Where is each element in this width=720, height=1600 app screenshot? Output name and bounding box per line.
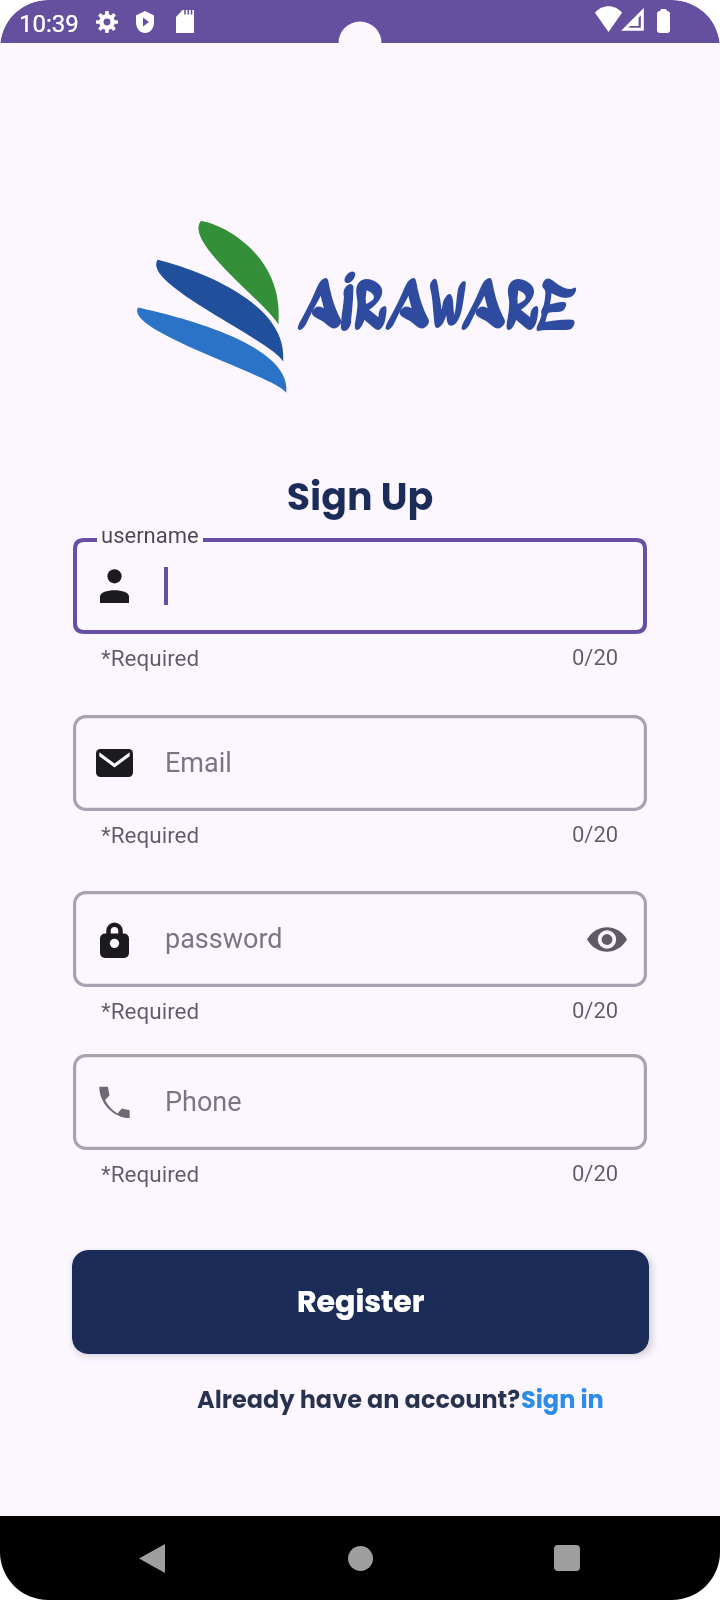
- button[interactable]: Email: [73, 715, 647, 811]
- button[interactable]: Show password: [584, 916, 630, 962]
- staticText: *Required: [101, 1161, 200, 1187]
- button[interactable]: [73, 538, 647, 634]
- staticText: *Required: [101, 998, 200, 1024]
- staticText: 0/20: [572, 645, 619, 671]
- staticText: Register: [297, 1281, 425, 1323]
- button[interactable]: Back: [112, 1516, 192, 1600]
- staticText: AIRAWARE: [296, 269, 575, 353]
- button[interactable]: Recents: [527, 1516, 607, 1600]
- staticText: password: [165, 923, 283, 955]
- staticText: Already have an account?: [197, 1383, 521, 1417]
- button[interactable]: Phone: [73, 1054, 647, 1150]
- button[interactable]: Sign in: [521, 1383, 604, 1417]
- staticText: 0/20: [572, 1161, 619, 1187]
- staticText: Sign Up: [0, 470, 720, 523]
- staticText: Sign in: [521, 1383, 604, 1417]
- staticText: *Required: [101, 822, 200, 848]
- staticText: *Required: [101, 645, 200, 671]
- staticText: Phone: [165, 1086, 242, 1118]
- button[interactable]: Register: [72, 1250, 649, 1354]
- staticText: 10:39: [19, 10, 79, 38]
- button[interactable]: Home: [320, 1516, 400, 1600]
- staticText: 0/20: [572, 998, 619, 1024]
- staticText: 0/20: [572, 822, 619, 848]
- staticText: Email: [165, 747, 232, 779]
- button[interactable]: password: [73, 891, 647, 987]
- staticText: username: [101, 523, 199, 549]
